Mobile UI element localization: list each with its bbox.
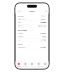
staticText: Home [17, 65, 21, 67]
staticText: Pay [30, 65, 33, 67]
staticText: Tax [18, 39, 21, 41]
staticText: Card ••42 [38, 25, 46, 27]
staticText: Today [41, 15, 46, 17]
button[interactable]: Method [18, 24, 46, 28]
staticText: $128.40 [40, 32, 46, 34]
staticText: Shipping [18, 36, 24, 38]
button[interactable]: Shipping [18, 35, 46, 38]
staticText: #4821 [41, 18, 46, 20]
staticText: Stats [37, 65, 40, 67]
staticText: Complete [40, 22, 46, 23]
button[interactable]: Status [18, 21, 46, 24]
button[interactable]: Tax [18, 38, 46, 42]
button[interactable]: Cards [22, 61, 29, 68]
staticText: DETAILS [18, 15, 24, 17]
button[interactable]: Stats [35, 61, 42, 68]
button[interactable]: Edit [44, 10, 46, 12]
staticText: Back [17, 10, 21, 12]
staticText: Subtotal [18, 32, 23, 34]
staticText: Reference [18, 18, 26, 20]
button[interactable]: Amount due [18, 46, 46, 49]
staticText: Amount due [18, 47, 26, 48]
staticText: $11.55 [41, 39, 46, 41]
button[interactable]: Reference [18, 18, 46, 21]
button[interactable]: Subtotal [18, 32, 46, 35]
staticText: Edit [44, 10, 46, 12]
staticText: Method [18, 25, 23, 27]
staticText: TOTAL [18, 43, 23, 45]
staticText: BREAKDOWN [18, 29, 27, 31]
button[interactable]: Back [17, 10, 21, 12]
staticText: More [43, 65, 47, 67]
button[interactable]: Pay [29, 61, 35, 68]
staticText: $6.00 [42, 36, 46, 38]
button[interactable]: Home [15, 61, 22, 68]
staticText: Summary [28, 10, 35, 12]
staticText: $145.95 [40, 47, 46, 48]
button[interactable]: More [42, 61, 48, 68]
staticText: Status [18, 22, 22, 23]
